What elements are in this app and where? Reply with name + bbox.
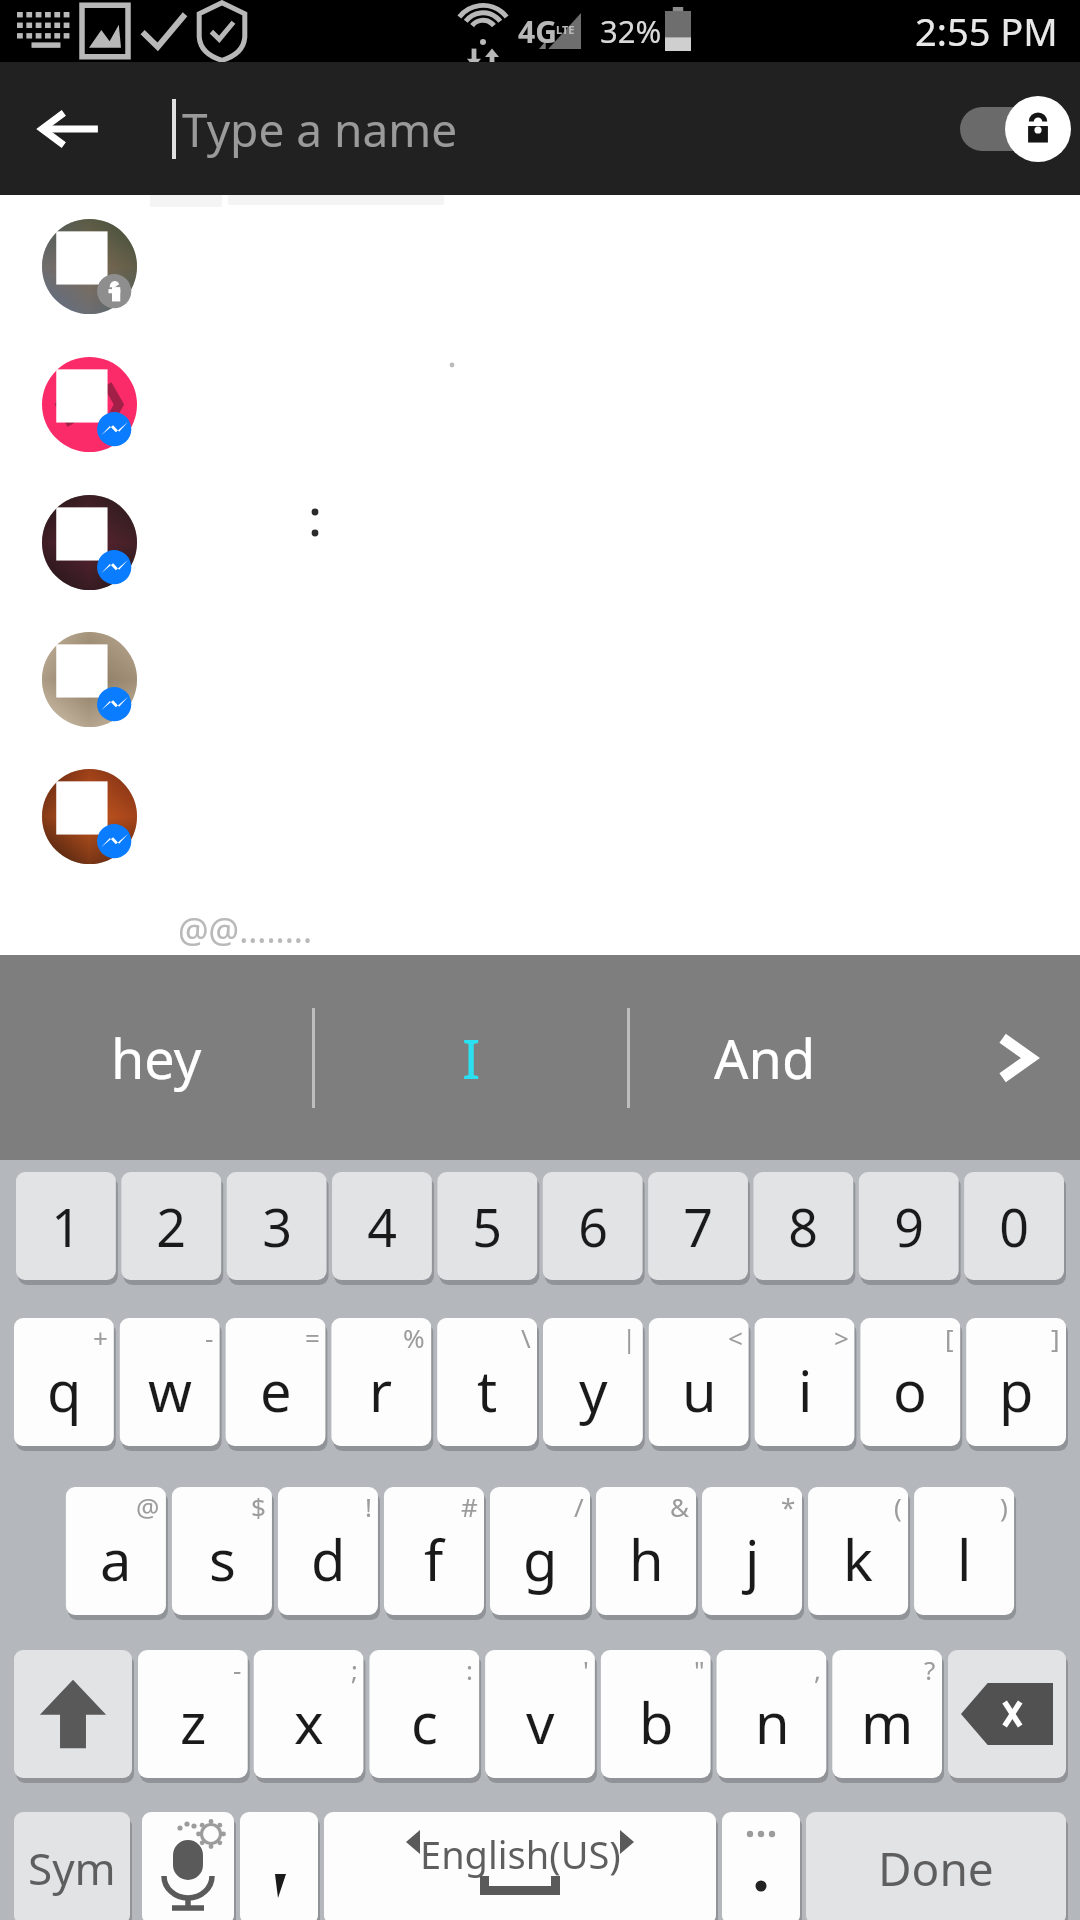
button[interactable]: ' bbox=[485, 1650, 595, 1778]
staticText: ) bbox=[1000, 1489, 1008, 1524]
staticText: n bbox=[755, 1684, 790, 1760]
button[interactable]: Type a name bbox=[172, 74, 458, 184]
button[interactable]: # bbox=[384, 1487, 484, 1615]
button[interactable]: = bbox=[226, 1318, 326, 1446]
staticText: t bbox=[477, 1352, 498, 1428]
button[interactable]: / bbox=[490, 1487, 590, 1615]
button[interactable] bbox=[0, 333, 1080, 470]
button[interactable]: 4 bbox=[332, 1172, 432, 1280]
button[interactable]: 2 bbox=[121, 1172, 221, 1280]
staticText: 5 bbox=[472, 1191, 502, 1262]
button[interactable] bbox=[0, 745, 1080, 882]
staticText: ] bbox=[1051, 1320, 1060, 1355]
button[interactable]: 3 bbox=[227, 1172, 327, 1280]
staticText: ? bbox=[924, 1652, 936, 1687]
staticText: English(US) bbox=[420, 1828, 621, 1880]
staticText: LTE bbox=[556, 22, 575, 37]
staticText: " bbox=[694, 1652, 705, 1687]
button[interactable]: ; bbox=[254, 1650, 364, 1778]
button[interactable]: + bbox=[14, 1318, 114, 1446]
staticText: g bbox=[523, 1521, 558, 1597]
staticText: y bbox=[579, 1352, 608, 1428]
button[interactable]: & bbox=[596, 1487, 696, 1615]
button[interactable]: ( bbox=[808, 1487, 908, 1615]
staticText: - bbox=[205, 1320, 214, 1355]
staticText: % bbox=[403, 1320, 425, 1355]
button[interactable]: 9 bbox=[859, 1172, 959, 1280]
staticText: r bbox=[369, 1352, 393, 1428]
button[interactable]: : bbox=[369, 1650, 479, 1778]
staticText: I bbox=[462, 1021, 481, 1095]
staticText: * bbox=[781, 1489, 796, 1524]
staticText: ( bbox=[894, 1489, 902, 1524]
button[interactable] bbox=[0, 195, 1080, 332]
button[interactable]: I bbox=[315, 955, 627, 1160]
button[interactable]: hey bbox=[0, 955, 312, 1160]
staticText: l bbox=[957, 1521, 972, 1597]
button[interactable]: @ bbox=[66, 1487, 166, 1615]
staticText: c bbox=[411, 1684, 438, 1760]
button[interactable]: ] bbox=[966, 1318, 1066, 1446]
staticText: - bbox=[233, 1652, 242, 1687]
staticText: 3 bbox=[262, 1191, 292, 1262]
staticText: j bbox=[745, 1521, 760, 1597]
staticText: < bbox=[728, 1320, 743, 1355]
staticText: 7 bbox=[683, 1191, 713, 1262]
button[interactable]: " bbox=[601, 1650, 711, 1778]
button[interactable]: - bbox=[138, 1650, 248, 1778]
button[interactable]: % bbox=[331, 1318, 431, 1446]
staticText: z bbox=[180, 1684, 207, 1760]
button[interactable]: Back bbox=[22, 81, 118, 177]
button[interactable]: And bbox=[630, 955, 960, 1160]
staticText: p bbox=[999, 1352, 1034, 1428]
button[interactable] bbox=[0, 608, 1080, 745]
staticText: s bbox=[209, 1521, 236, 1597]
button[interactable]: * bbox=[702, 1487, 802, 1615]
staticText: ; bbox=[351, 1652, 358, 1687]
button[interactable]: < bbox=[649, 1318, 749, 1446]
staticText: i bbox=[798, 1352, 813, 1428]
button[interactable]: More suggestions bbox=[960, 955, 1080, 1160]
button[interactable]: Shift bbox=[14, 1650, 132, 1778]
staticText: f bbox=[424, 1521, 444, 1597]
button[interactable]: [ bbox=[860, 1318, 960, 1446]
button[interactable]: 8 bbox=[753, 1172, 853, 1280]
button[interactable] bbox=[0, 471, 1080, 608]
button[interactable]: 0 bbox=[964, 1172, 1064, 1280]
button[interactable]: 5 bbox=[437, 1172, 537, 1280]
button[interactable]: , bbox=[717, 1650, 827, 1778]
staticText: $ bbox=[251, 1489, 266, 1524]
staticText: h bbox=[629, 1521, 664, 1597]
button[interactable]: Done bbox=[806, 1812, 1066, 1920]
staticText: w bbox=[148, 1352, 193, 1428]
staticText: e bbox=[260, 1352, 292, 1428]
button[interactable]: Space, English(US) bbox=[324, 1812, 716, 1920]
button[interactable]: Comma bbox=[240, 1812, 318, 1920]
button[interactable]: Sym bbox=[14, 1812, 130, 1920]
button[interactable]: 6 bbox=[543, 1172, 643, 1280]
staticText: Type a name bbox=[182, 98, 458, 161]
staticText: / bbox=[574, 1489, 584, 1524]
button[interactable]: | bbox=[543, 1318, 643, 1446]
button[interactable]: Privacy lock toggle bbox=[948, 79, 1068, 179]
button[interactable]: ? bbox=[832, 1650, 942, 1778]
button[interactable]: Backspace bbox=[948, 1650, 1066, 1778]
staticText: a bbox=[100, 1521, 132, 1597]
button[interactable]: 1 bbox=[16, 1172, 116, 1280]
button[interactable]: $ bbox=[172, 1487, 272, 1615]
staticText: m bbox=[861, 1684, 914, 1760]
staticText: ' bbox=[583, 1652, 589, 1687]
staticText: 8 bbox=[788, 1191, 818, 1262]
staticText: 4 bbox=[367, 1191, 397, 1262]
button[interactable]: ) bbox=[914, 1487, 1014, 1615]
button[interactable]: - bbox=[120, 1318, 220, 1446]
staticText: 9 bbox=[894, 1191, 924, 1262]
staticText: \ bbox=[521, 1320, 531, 1355]
button[interactable]: > bbox=[755, 1318, 855, 1446]
button[interactable]: 7 bbox=[648, 1172, 748, 1280]
button[interactable]: Voice input bbox=[142, 1812, 234, 1920]
button[interactable]: \ bbox=[437, 1318, 537, 1446]
button[interactable]: Period bbox=[722, 1812, 800, 1920]
button[interactable]: ! bbox=[278, 1487, 378, 1615]
staticText: Done bbox=[878, 1837, 994, 1900]
